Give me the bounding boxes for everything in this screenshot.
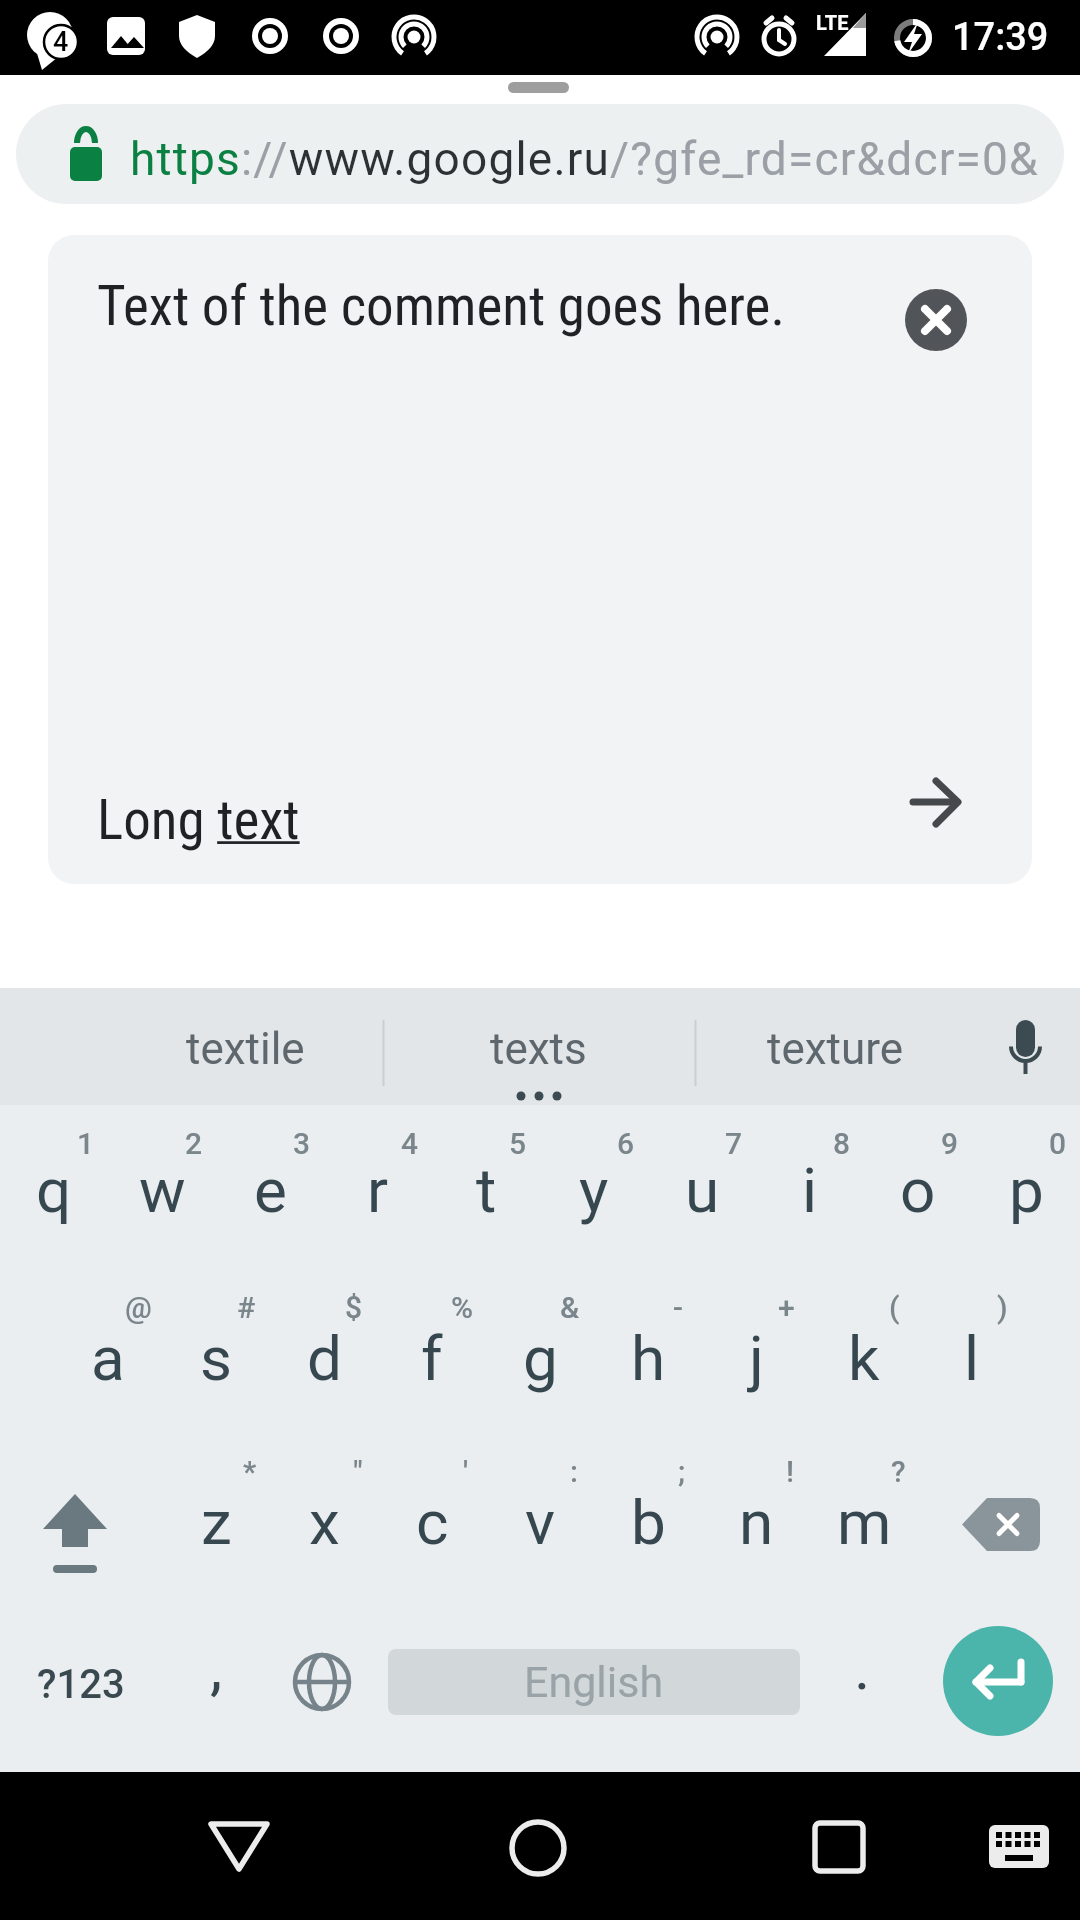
button[interactable] [648,1105,756,1272]
button[interactable] [594,1439,702,1606]
staticText: @ [125,1290,152,1325]
staticText: 1 [77,1126,95,1161]
button[interactable] [270,1606,378,1772]
staticText: + [778,1290,795,1325]
button[interactable] [702,1439,810,1606]
button[interactable] [0,1606,162,1772]
button[interactable] [270,1439,378,1606]
button[interactable] [120,995,380,1087]
button[interactable] [324,1105,432,1272]
staticText: c [416,1486,449,1559]
staticText: ! [786,1454,795,1489]
staticText: 0 [1049,1126,1067,1161]
staticText: LTE [816,11,849,34]
staticText: $ [345,1290,363,1325]
staticText: 3 [293,1126,311,1161]
staticText: & [560,1290,580,1325]
button[interactable] [16,104,1064,204]
staticText: r [367,1154,389,1227]
staticText: 4 [401,1126,419,1161]
staticText: n [739,1486,774,1559]
staticText: : [570,1454,578,1489]
staticText: f [421,1322,443,1395]
staticText: 4 [53,26,69,58]
button[interactable] [540,1105,648,1272]
staticText: a [91,1322,125,1395]
button[interactable] [810,1439,918,1606]
staticText: % [451,1290,474,1325]
staticText: 2 [185,1126,203,1161]
button[interactable] [378,1439,486,1606]
button[interactable] [0,1105,108,1272]
button[interactable] [486,1272,594,1439]
staticText: o [900,1154,936,1227]
staticText: q [36,1154,72,1227]
button[interactable] [400,995,680,1087]
staticText: Long text [97,788,300,852]
staticText: " [353,1454,363,1489]
button[interactable] [903,770,969,836]
staticText: w [139,1154,186,1227]
button[interactable] [54,1272,162,1439]
button[interactable] [162,1272,270,1439]
staticText: s [200,1322,232,1395]
button[interactable] [108,1105,216,1272]
staticText: e [254,1154,287,1227]
staticText: - [673,1290,683,1325]
staticText: 7 [725,1126,743,1161]
button[interactable] [216,1105,324,1272]
staticText: l [964,1322,980,1395]
button[interactable] [918,1439,1080,1606]
button[interactable] [486,1439,594,1606]
staticText: 9 [941,1126,959,1161]
staticText: p [1009,1154,1044,1227]
button[interactable] [432,1105,540,1272]
staticText: d [307,1322,342,1395]
button[interactable] [943,1626,1053,1736]
button[interactable] [905,289,967,351]
button[interactable] [810,1606,918,1772]
button[interactable] [985,1008,1065,1088]
staticText: u [685,1154,720,1227]
button[interactable] [388,1649,800,1715]
button[interactable] [756,1105,864,1272]
button[interactable] [478,1788,598,1908]
button[interactable] [779,1787,899,1907]
staticText: , [210,1631,223,1704]
staticText: x [309,1486,340,1559]
staticText: ; [678,1454,686,1489]
button[interactable] [969,1796,1069,1896]
button[interactable] [702,1272,810,1439]
staticText: # [237,1290,256,1325]
staticText: * [243,1454,257,1489]
staticText: y [579,1154,609,1227]
staticText: ( [889,1290,900,1325]
staticText: v [525,1486,556,1559]
staticText: ) [997,1290,1008,1325]
button[interactable] [162,1439,270,1606]
staticText: Text of the comment goes here. [97,274,785,338]
staticText: 6 [617,1126,635,1161]
button[interactable] [810,1272,918,1439]
button[interactable] [864,1105,972,1272]
button[interactable] [270,1272,378,1439]
staticText: g [523,1322,558,1395]
button[interactable] [162,1606,270,1772]
button[interactable] [179,1786,299,1906]
button[interactable] [710,995,970,1087]
button[interactable] [378,1272,486,1439]
staticText: texture [767,1023,904,1075]
staticText: https://www.google.ru/?gfe_rd=cr&dcr=0& [130,132,1039,186]
staticText: 5 [509,1126,527,1161]
staticText: textile [186,1023,305,1075]
button[interactable] [0,1439,162,1606]
staticText: texts [490,1023,587,1075]
staticText: ' [463,1454,469,1489]
button[interactable] [918,1272,1026,1439]
button[interactable] [594,1272,702,1439]
staticText: k [848,1322,880,1395]
staticText: z [201,1486,232,1559]
button[interactable] [972,1105,1080,1272]
button[interactable] [48,235,1032,884]
staticText: . [854,1631,871,1704]
